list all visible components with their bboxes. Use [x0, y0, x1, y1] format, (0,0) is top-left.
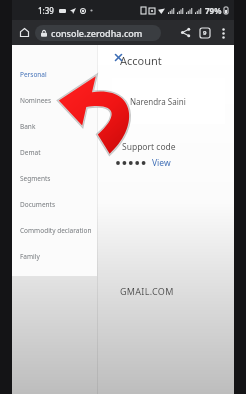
staticText: Account [120, 53, 162, 68]
button[interactable]: Tabs [195, 23, 214, 42]
button[interactable]: Commodity declaration [12, 217, 97, 243]
staticText: 9 [203, 29, 207, 37]
button[interactable]: View [152, 157, 171, 169]
button[interactable]: Segments [12, 165, 97, 191]
staticText: Documents [20, 200, 56, 209]
staticText: GMAIL.COM [120, 285, 174, 297]
staticText: Support code [122, 141, 176, 153]
button[interactable]: console.zerodha.com [35, 25, 161, 41]
button[interactable]: Home [15, 23, 34, 42]
button[interactable]: Demat [12, 139, 97, 165]
staticText: Demat [20, 148, 41, 157]
button[interactable]: Nominees [12, 87, 97, 113]
button[interactable]: Share [176, 23, 195, 42]
button[interactable]: Documents [12, 191, 97, 217]
staticText: Personal [20, 70, 47, 79]
staticText: Commodity declaration [20, 226, 92, 235]
button[interactable]: Bank [12, 113, 97, 139]
staticText: console.zerodha.com [51, 27, 143, 39]
staticText: 79% [205, 5, 222, 16]
staticText: Family [20, 252, 40, 261]
button[interactable]: Family [12, 243, 97, 269]
staticText: Bank [20, 122, 36, 131]
button[interactable]: Close [111, 50, 126, 65]
staticText: Segments [20, 174, 51, 183]
button[interactable]: More options [214, 24, 232, 42]
staticText: Nominees [20, 96, 52, 105]
staticText: Narendra Saini [130, 96, 186, 107]
button[interactable]: Personal [12, 61, 97, 87]
staticText: View [152, 157, 171, 169]
staticText: 1:39 [38, 5, 54, 16]
